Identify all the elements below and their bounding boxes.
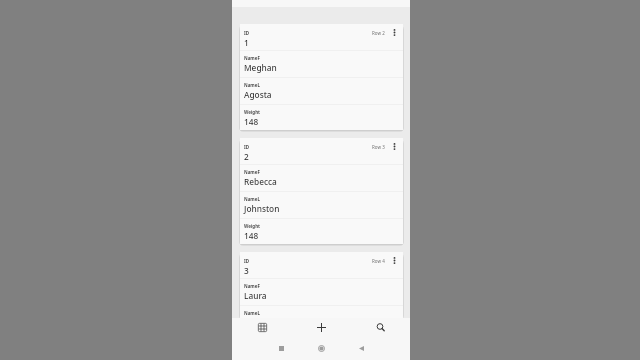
button[interactable]: ID bbox=[240, 252, 403, 318]
button[interactable]: Recent apps bbox=[261, 337, 301, 360]
staticText: 148 bbox=[244, 230, 259, 241]
button[interactable]: Add record bbox=[292, 318, 351, 337]
staticText: ID bbox=[244, 30, 250, 36]
staticText: Meghan bbox=[244, 62, 277, 73]
button[interactable]: More options bbox=[390, 28, 399, 37]
button[interactable]: Back bbox=[341, 337, 381, 360]
button[interactable]: More options bbox=[390, 142, 399, 151]
button[interactable]: ID bbox=[240, 138, 403, 244]
staticText: 2 bbox=[244, 151, 249, 162]
button[interactable]: Home bbox=[301, 337, 341, 360]
staticText: Row 3 bbox=[372, 144, 385, 150]
staticText: NameF bbox=[244, 283, 260, 289]
button[interactable]: ID bbox=[240, 24, 403, 130]
staticText: ID bbox=[244, 144, 250, 150]
staticText: NameL bbox=[244, 310, 260, 316]
staticText: NameL bbox=[244, 196, 260, 202]
staticText: ID bbox=[244, 258, 250, 264]
staticText: 3 bbox=[244, 265, 249, 276]
staticText: 148 bbox=[244, 116, 259, 127]
staticText: Weight bbox=[244, 223, 261, 229]
staticText: Rebecca bbox=[244, 176, 277, 187]
staticText: NameF bbox=[244, 55, 260, 61]
staticText: 1 bbox=[244, 37, 249, 48]
button[interactable]: More options bbox=[390, 256, 399, 265]
staticText: Row 4 bbox=[372, 258, 385, 264]
staticText: Weight bbox=[244, 109, 261, 115]
staticText: NameF bbox=[244, 169, 260, 175]
staticText: Johnston bbox=[244, 203, 280, 214]
button[interactable]: Tables bbox=[232, 318, 292, 337]
staticText: Laura bbox=[244, 290, 267, 301]
staticText: NameL bbox=[244, 82, 260, 88]
staticText: Agosta bbox=[244, 89, 272, 100]
staticText: Row 2 bbox=[372, 30, 385, 36]
button[interactable]: Search bbox=[351, 318, 410, 337]
